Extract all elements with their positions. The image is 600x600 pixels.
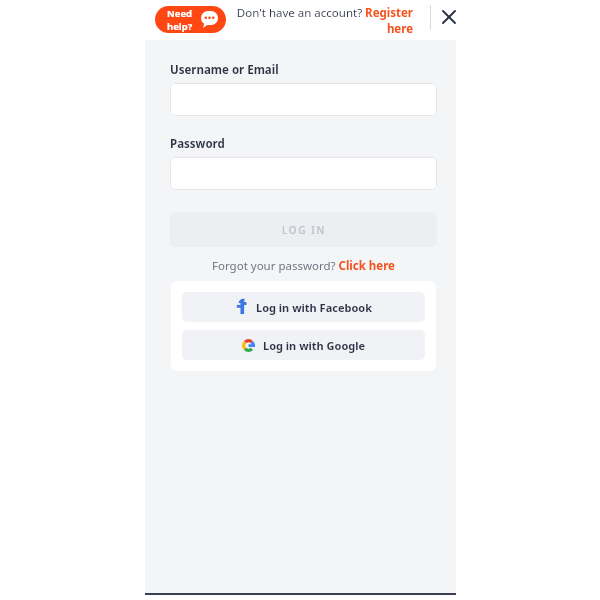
staticText: Username or Email [170,62,279,78]
button[interactable]: Text field [170,157,437,190]
staticText: help? [167,20,193,33]
staticText: LOG IN [282,223,326,237]
button[interactable]: Close [435,3,463,31]
staticText: Need [167,7,193,20]
staticText: Log in with Google [263,338,366,353]
staticText: Password [170,136,225,152]
staticText: Don't have an account? Register here [231,5,413,36]
button[interactable]: Log in with Facebook [182,292,425,322]
button[interactable]: Forgot your password? Click here [170,256,437,276]
staticText: Forgot your password? Click here [212,258,395,274]
button[interactable]: Text field [170,83,437,116]
staticText: Log in with Facebook [256,300,373,315]
button[interactable]: Need [155,6,226,33]
button[interactable]: LOG IN [170,212,437,247]
button[interactable]: Don't have an account? Register here [231,3,413,38]
button[interactable]: Log in with Google [182,330,425,360]
